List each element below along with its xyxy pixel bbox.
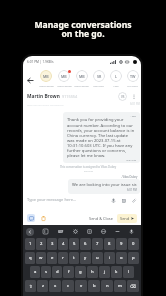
button[interactable]: Keyboard tool	[85, 227, 94, 236]
button[interactable]: q	[25, 252, 35, 264]
button[interactable]: Canned replies	[27, 214, 35, 222]
button[interactable]: GIF	[56, 227, 65, 236]
staticText: L	[115, 74, 117, 79]
button[interactable]: ⇧	[25, 280, 36, 292]
button[interactable]: v	[75, 280, 87, 292]
button[interactable]: i	[104, 252, 115, 264]
staticText: 3	[51, 241, 54, 247]
staticText: MB	[61, 74, 67, 79]
button[interactable]: L	[107, 70, 124, 90]
staticText: now you can check the balance	[27, 103, 64, 106]
staticText: c	[67, 283, 70, 289]
button[interactable]: f	[63, 266, 74, 278]
staticText: e	[51, 255, 54, 261]
staticText: s	[45, 269, 48, 275]
button[interactable]: Notes	[39, 214, 47, 222]
button[interactable]: Keyboard tool	[71, 227, 80, 236]
button[interactable]: n	[101, 280, 113, 292]
staticText: ⇧	[29, 284, 33, 289]
staticText: x	[54, 283, 57, 289]
staticText: Tim Ward	[127, 85, 138, 88]
button[interactable]: ⌫	[127, 280, 139, 292]
staticText: We are looking into your issue sir.	[72, 182, 137, 188]
button[interactable]: SR	[90, 70, 107, 90]
staticText: This conversation is assigned to Vikas D…	[60, 165, 117, 169]
staticText: MB	[43, 74, 49, 79]
staticText: Send	[120, 216, 130, 221]
button[interactable]: l	[123, 266, 134, 278]
staticText: n	[106, 283, 109, 289]
button[interactable]: u	[92, 252, 103, 264]
staticText: Send & Close	[89, 216, 113, 221]
button[interactable]: s	[41, 266, 51, 278]
button[interactable]: MB	[73, 70, 90, 90]
button[interactable]: p	[128, 252, 139, 264]
staticText: q	[29, 255, 32, 261]
staticText: Martin Brown	[27, 93, 60, 100]
button[interactable]: r	[58, 252, 68, 264]
button[interactable]: b	[88, 280, 100, 292]
button[interactable]: j	[99, 266, 110, 278]
staticText: Manage conversations on the go.	[34, 19, 132, 39]
button[interactable]: Back	[23, 70, 37, 90]
staticText: u	[96, 255, 99, 261]
staticText: o	[120, 255, 123, 261]
button[interactable]: 8	[104, 238, 115, 250]
button[interactable]: g	[75, 266, 86, 278]
button[interactable]: h	[87, 266, 98, 278]
button[interactable]: k	[111, 266, 122, 278]
staticText: 6	[84, 241, 87, 247]
staticText: f	[68, 269, 70, 275]
button[interactable]: Keyboard tool	[99, 227, 108, 236]
staticText: MB	[79, 74, 85, 79]
button[interactable]: 9	[116, 238, 127, 250]
staticText: 2	[40, 241, 43, 247]
staticText: - Vikas Dubey	[121, 175, 138, 179]
button[interactable]: 5	[69, 238, 79, 250]
staticText: p	[132, 255, 135, 261]
button[interactable]: Keyboard tool	[113, 227, 122, 236]
button[interactable]: 4	[58, 238, 68, 250]
button[interactable]: MB	[37, 70, 55, 90]
button[interactable]: m	[114, 280, 126, 292]
staticText: - Bot	[67, 114, 136, 117]
button[interactable]: w	[36, 252, 46, 264]
button[interactable]: 2	[36, 238, 46, 250]
staticText: 4	[62, 241, 65, 247]
button[interactable]: y	[80, 252, 91, 264]
button[interactable]: Keyboard tool	[41, 227, 50, 236]
button[interactable]: TW	[124, 70, 141, 90]
button[interactable]: 3	[47, 238, 57, 250]
staticText: 5	[73, 241, 76, 247]
staticText: Martin Brown	[39, 85, 54, 88]
button[interactable]: t	[69, 252, 79, 264]
button[interactable]: 0	[128, 238, 139, 250]
staticText: i	[109, 255, 111, 261]
button[interactable]: z	[37, 280, 48, 292]
button[interactable]: 6	[80, 238, 91, 250]
button[interactable]: c	[62, 280, 74, 292]
staticText: h	[91, 269, 94, 275]
button[interactable]: o	[116, 252, 127, 264]
button[interactable]: d	[52, 266, 62, 278]
button[interactable]: Send & Close	[88, 215, 114, 222]
button[interactable]: Templates	[120, 197, 127, 204]
button[interactable]: MB	[55, 70, 73, 90]
button[interactable]: 7	[92, 238, 103, 250]
staticText: SR	[97, 74, 102, 79]
button[interactable]: Send	[117, 214, 137, 223]
button[interactable]: a	[30, 266, 40, 278]
button[interactable]: Expand toolbar	[26, 228, 34, 236]
staticText: Type your message here...	[27, 197, 77, 202]
staticText: 7	[96, 241, 99, 247]
staticText: TW	[130, 74, 136, 79]
staticText: t	[73, 255, 75, 261]
button[interactable]: e	[47, 252, 57, 264]
button[interactable]: 1	[25, 238, 35, 250]
button[interactable]: Voice input	[110, 197, 117, 204]
button[interactable]: Keyboard tool	[127, 227, 136, 236]
button[interactable]: x	[49, 280, 61, 292]
staticText: 8	[108, 241, 111, 247]
button[interactable]: More options	[130, 93, 137, 100]
button[interactable]: Attach file	[130, 197, 137, 204]
